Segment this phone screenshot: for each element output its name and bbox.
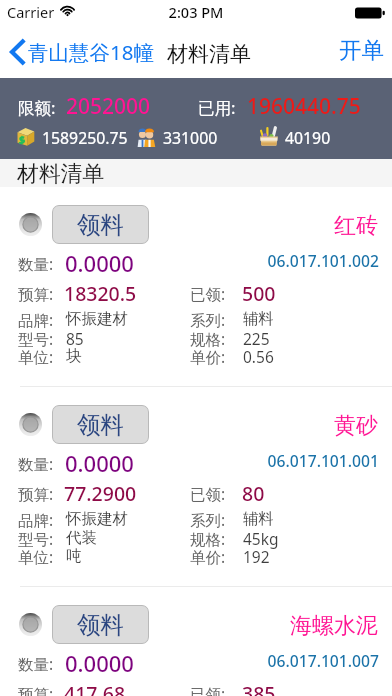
staticText: 领料 — [77, 410, 124, 440]
staticText: 预算: — [18, 483, 54, 504]
staticText: 规格: — [190, 528, 226, 549]
staticText: 1589250.75 — [42, 127, 128, 149]
staticText: 06.017.101.007 — [0, 650, 379, 671]
button[interactable]: 领料 — [52, 205, 149, 244]
staticText: 06.017.101.002 — [0, 250, 379, 271]
staticText: 单价: — [190, 346, 226, 367]
button[interactable]: 领料 — [0, 387, 392, 587]
staticText: 品牌: — [18, 509, 54, 530]
staticText: 怀振建材 — [66, 509, 128, 529]
button[interactable]: 领料 — [0, 587, 392, 696]
staticText: 青山慧谷18幢 — [28, 38, 154, 66]
staticText: 331000 — [163, 127, 218, 149]
staticText: 2052000 — [66, 92, 151, 121]
staticText: 45kg — [243, 528, 279, 549]
staticText: 领料 — [77, 210, 124, 240]
staticText: 1960440.75 — [247, 92, 361, 121]
button[interactable]: 领料 — [52, 405, 149, 444]
staticText: 代装 — [66, 528, 97, 548]
staticText: 40190 — [285, 127, 331, 149]
staticText: 辅料 — [243, 309, 274, 329]
staticText: 海螺水泥 — [0, 612, 378, 640]
staticText: 型号: — [18, 328, 54, 349]
staticText: 已用: — [198, 96, 236, 119]
staticText: 0.56 — [243, 346, 274, 367]
staticText: 06.017.101.001 — [0, 450, 379, 471]
button[interactable]: 领料 — [0, 187, 392, 387]
staticText: 怀振建材 — [66, 309, 128, 329]
staticText: 领料 — [77, 610, 124, 640]
staticText: 数量: — [18, 253, 54, 274]
staticText: 已领: — [190, 283, 226, 304]
staticText: 417.68 — [64, 680, 126, 696]
staticText: 单价: — [190, 546, 226, 567]
staticText: 规格: — [190, 328, 226, 349]
staticText: 数量: — [18, 653, 54, 674]
staticText: 0.0000 — [65, 248, 134, 278]
staticText: 192 — [243, 546, 270, 567]
staticText: 块 — [66, 346, 82, 366]
staticText: 开单 — [339, 36, 384, 64]
staticText: 系列: — [190, 509, 226, 530]
staticText: 已领: — [190, 483, 226, 504]
staticText: 80 — [242, 480, 265, 507]
staticText: 0.0000 — [65, 648, 134, 678]
staticText: 18320.5 — [64, 280, 137, 307]
staticText: 材料清单 — [17, 160, 105, 187]
staticText: 品牌: — [18, 309, 54, 330]
staticText: Carrier — [7, 2, 55, 22]
staticText: 已领: — [190, 683, 226, 696]
staticText: 2:03 PM — [0, 2, 392, 22]
staticText: 辅料 — [243, 509, 274, 529]
staticText: 型号: — [18, 528, 54, 549]
staticText: 红砖 — [0, 212, 378, 240]
staticText: 0.0000 — [65, 448, 134, 478]
staticText: 预算: — [18, 683, 54, 696]
staticText: 吨 — [66, 546, 82, 566]
staticText: 385 — [242, 680, 276, 696]
button[interactable]: 领料 — [52, 605, 149, 644]
staticText: 黄砂 — [0, 412, 378, 440]
button[interactable]: 青山慧谷18幢 — [6, 36, 156, 68]
button[interactable]: 开单 — [333, 34, 390, 66]
staticText: 225 — [243, 328, 270, 349]
staticText: 单位: — [18, 346, 54, 367]
staticText: 预算: — [18, 283, 54, 304]
staticText: 单位: — [18, 546, 54, 567]
staticText: 数量: — [18, 453, 54, 474]
staticText: 500 — [242, 280, 276, 307]
staticText: 系列: — [190, 309, 226, 330]
staticText: 限额: — [18, 96, 56, 119]
staticText: 85 — [66, 328, 84, 349]
staticText: 77.2900 — [64, 480, 137, 507]
staticText: 材料清单 — [167, 41, 251, 67]
